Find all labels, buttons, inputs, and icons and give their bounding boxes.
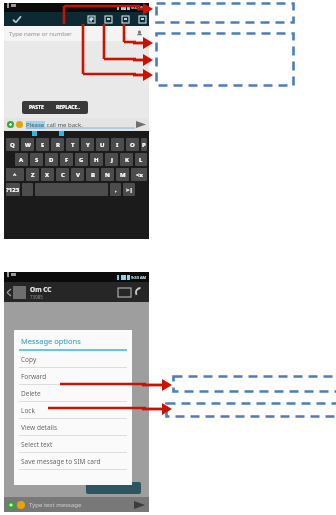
button[interactable]: , (110, 183, 121, 196)
button[interactable]: Lock (14, 402, 132, 419)
button[interactable]: Z (26, 168, 39, 181)
button[interactable]: Select text (14, 436, 132, 453)
staticText: X (45, 171, 50, 179)
button[interactable]: Action 2 (121, 15, 129, 23)
button[interactable]: L (135, 153, 147, 166)
button[interactable]: >| (123, 183, 135, 196)
staticText: >| (126, 186, 133, 194)
button[interactable]: T (66, 138, 79, 151)
button[interactable]: X (41, 168, 54, 181)
button[interactable]: Action 0 (87, 15, 95, 23)
staticText: K (125, 156, 129, 164)
button[interactable]: Y (81, 138, 94, 151)
staticText: call me back. (45, 121, 83, 129)
button[interactable]: R (51, 138, 64, 151)
button[interactable]: D (45, 153, 58, 166)
staticText: 73085 (30, 294, 43, 300)
button[interactable]: Copy (14, 351, 132, 368)
button[interactable]: E (36, 138, 49, 151)
staticText: Type name or number (9, 30, 72, 38)
staticText: N (105, 171, 110, 179)
staticText: O (130, 141, 135, 149)
button[interactable]: Forward (14, 368, 132, 385)
button[interactable]: I (111, 138, 124, 151)
staticText: V (76, 171, 80, 179)
button[interactable]: View details (14, 419, 132, 436)
staticText: Please (26, 121, 45, 129)
staticText: R (56, 141, 60, 149)
staticText: E (41, 141, 45, 149)
button[interactable]: G (75, 153, 88, 166)
button[interactable]: S (30, 153, 43, 166)
staticText: P (142, 141, 146, 149)
other: Contacts (136, 30, 143, 37)
staticText: <x (136, 171, 143, 179)
staticText: F (65, 156, 69, 164)
staticText: ?123 (6, 186, 20, 194)
other: Done (10, 12, 24, 26)
staticText: Copy (21, 355, 37, 364)
staticText: ^ (13, 171, 17, 179)
staticText: Message options (21, 336, 81, 346)
button[interactable]: H (90, 153, 103, 166)
staticText: 9:32 AM (131, 5, 147, 10)
button[interactable]: ?123 (6, 183, 20, 196)
button[interactable]: PASTE (29, 104, 44, 111)
button[interactable]: Contact card (118, 288, 131, 297)
button[interactable]: Send (133, 500, 146, 510)
button[interactable]: J (105, 153, 118, 166)
staticText: Z (31, 171, 35, 179)
staticText: U (100, 141, 105, 149)
button[interactable]: Action 1 (104, 15, 112, 23)
staticText: Save message to SIM card (21, 457, 101, 466)
button[interactable]: C (56, 168, 69, 181)
button[interactable]: Action 3 (138, 15, 146, 23)
button[interactable]: B (86, 168, 99, 181)
staticText: Y (86, 141, 90, 149)
button[interactable]: W (21, 138, 34, 151)
staticText: C (61, 171, 65, 179)
staticText: , (115, 186, 117, 194)
button[interactable]: O (126, 138, 139, 151)
button[interactable]: M (116, 168, 129, 181)
staticText: Q (10, 141, 15, 149)
button[interactable]: ^ (6, 168, 24, 181)
staticText: T (71, 141, 75, 149)
staticText: G (79, 156, 84, 164)
button[interactable]: Delete (14, 385, 132, 402)
staticText: A (19, 156, 24, 164)
staticText: S (35, 156, 39, 164)
button[interactable]: Send (135, 120, 147, 129)
button[interactable]: A (15, 153, 28, 166)
button[interactable]: N (101, 168, 114, 181)
staticText: W (25, 141, 31, 149)
button[interactable]: V (71, 168, 84, 181)
staticText: 9:33 AM (131, 275, 147, 280)
staticText: Type text message (29, 501, 82, 509)
button[interactable]: K (120, 153, 133, 166)
staticText: Select text (21, 440, 53, 449)
button[interactable]: Add (7, 501, 15, 509)
staticText: M (120, 171, 126, 179)
button[interactable]: Save message to SIM card (14, 453, 132, 470)
button[interactable]: Emoji (17, 501, 25, 509)
staticText: D (49, 156, 54, 164)
button[interactable]: Add (7, 121, 14, 128)
staticText: B (91, 171, 95, 179)
button[interactable]: Q (6, 138, 19, 151)
staticText: Forward (21, 372, 47, 381)
button[interactable]: REPLACE.. (56, 104, 81, 111)
staticText: L (139, 156, 143, 164)
staticText: Lock (21, 406, 35, 415)
button[interactable]: U (96, 138, 109, 151)
staticText: Om CC (30, 285, 52, 294)
button[interactable]: P (141, 138, 147, 151)
button[interactable]: <x (131, 168, 147, 181)
staticText: I (116, 141, 119, 149)
button[interactable]: Emoji (16, 121, 23, 128)
button[interactable]: F (60, 153, 73, 166)
button[interactable]: Call (136, 288, 145, 297)
staticText: View details (21, 423, 58, 432)
